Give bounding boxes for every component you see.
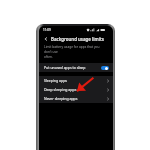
other: Put unused apps to sleep toggle bbox=[101, 66, 109, 70]
staticText: 11:09 bbox=[43, 28, 51, 32]
button[interactable]: Never sleeping apps bbox=[39, 94, 113, 103]
staticText: Background usage limits bbox=[51, 36, 104, 42]
button[interactable]: Back bbox=[42, 35, 50, 43]
button[interactable]: Sleeping apps bbox=[39, 76, 113, 85]
staticText: Put unused apps to sleep bbox=[44, 65, 86, 70]
staticText: Never sleeping apps bbox=[44, 96, 78, 101]
staticText: Limit battery usage for apps that you do… bbox=[44, 45, 107, 59]
staticText: Sleeping apps bbox=[44, 78, 67, 83]
button[interactable]: Put unused apps to sleep bbox=[39, 63, 113, 72]
staticText: Deep sleeping apps bbox=[44, 87, 77, 92]
button[interactable]: Deep sleeping apps bbox=[39, 85, 113, 94]
